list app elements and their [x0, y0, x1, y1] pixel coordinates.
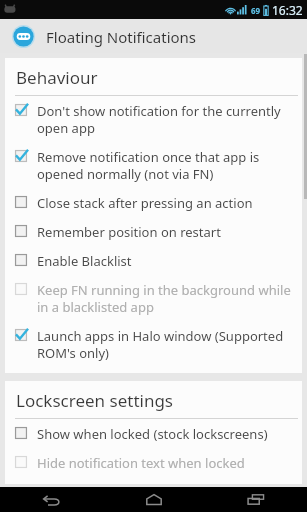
staticText: Remember position on restart: [37, 223, 221, 241]
staticText: Enable Blacklist: [37, 252, 132, 270]
staticText: Behaviour: [16, 66, 98, 89]
button[interactable]: Remove notification once that app is ope…: [5, 142, 302, 188]
button[interactable]: Close stack after pressing an action: [5, 188, 302, 217]
button[interactable]: Back: [0, 487, 103, 512]
staticText: Keep FN running in the background while …: [37, 281, 294, 316]
staticText: Remove notification once that app is ope…: [37, 148, 294, 183]
button[interactable]: Keep FN running in the background while …: [5, 275, 302, 321]
button[interactable]: Home: [103, 487, 205, 512]
staticText: Hide notification text when locked: [37, 454, 245, 472]
staticText: Launch apps in Halo window (Supported RO…: [37, 327, 294, 362]
button[interactable]: Show when locked (stock lockscreens): [5, 419, 302, 448]
staticText: Show when locked (stock lockscreens): [37, 425, 268, 443]
staticText: Close stack after pressing an action: [37, 194, 253, 212]
staticText: Lockscreen settings: [16, 389, 174, 412]
staticText: Floating Notifications: [46, 27, 197, 47]
staticText: 69: [251, 5, 261, 16]
staticText: 16:32: [272, 2, 303, 18]
button[interactable]: Enable Blacklist: [5, 246, 302, 275]
button[interactable]: Don't show notification for the currentl…: [5, 96, 302, 142]
button[interactable]: Recent apps: [205, 487, 307, 512]
button[interactable]: Launch apps in Halo window (Supported RO…: [5, 321, 302, 367]
button[interactable]: Remember position on restart: [5, 217, 302, 246]
button[interactable]: Hide notification text when locked: [5, 448, 302, 477]
staticText: Don't show notification for the currentl…: [37, 102, 294, 137]
